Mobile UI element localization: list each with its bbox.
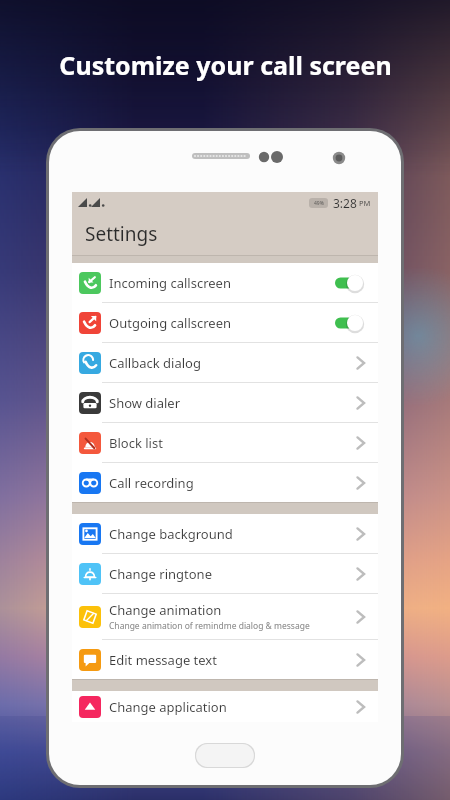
button[interactable]: Outgoing callscreen xyxy=(72,303,378,342)
button[interactable]: Change background xyxy=(72,514,378,553)
button[interactable]: Block list xyxy=(72,423,378,462)
staticText: 3:28 xyxy=(333,195,357,211)
button[interactable]: Change application xyxy=(72,691,378,722)
button[interactable]: Toggle xyxy=(334,273,368,293)
button[interactable]: Change ringtone xyxy=(72,554,378,593)
staticText: Change animation of remindme dialog & me… xyxy=(109,620,310,632)
staticText: Outgoing callscreen xyxy=(109,314,334,332)
staticText: Incoming callscreen xyxy=(109,274,334,292)
staticText: Change ringtone xyxy=(109,565,212,583)
staticText: Settings xyxy=(85,221,158,247)
staticText: Change animation xyxy=(109,601,222,619)
staticText: 49% xyxy=(314,200,324,207)
staticText: Change background xyxy=(109,525,233,543)
staticText: Customize your call screen xyxy=(59,48,392,82)
staticText: PM xyxy=(359,198,371,208)
button[interactable]: Call recording xyxy=(72,463,378,502)
staticText: Call recording xyxy=(109,474,194,492)
staticText: Show dialer xyxy=(109,394,181,412)
staticText: Edit message text xyxy=(109,651,217,669)
button[interactable]: Incoming callscreen xyxy=(72,263,378,302)
button[interactable]: Callback dialog xyxy=(72,343,378,382)
button[interactable]: Change animation xyxy=(72,594,378,639)
button[interactable]: Toggle xyxy=(334,313,368,333)
staticText: Block list xyxy=(109,434,163,452)
button[interactable]: Show dialer xyxy=(72,383,378,422)
button[interactable]: Edit message text xyxy=(72,640,378,679)
staticText: Change application xyxy=(109,698,227,716)
staticText: Callback dialog xyxy=(109,354,201,372)
button[interactable]: Home xyxy=(195,743,255,768)
